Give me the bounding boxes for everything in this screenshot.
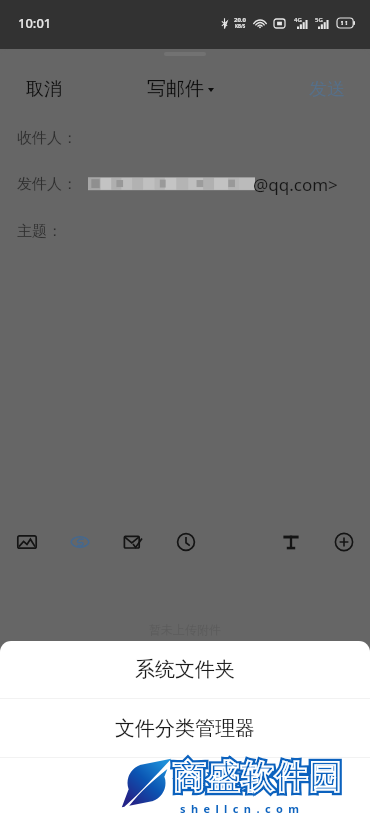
staticText: 文件分类管理器 xyxy=(115,716,255,741)
button[interactable]: 系统文件夹 xyxy=(0,641,370,698)
staticText: @qq.com> xyxy=(253,173,338,196)
button[interactable]: Attach file xyxy=(60,521,100,563)
staticText: 取消 xyxy=(26,78,62,101)
staticText: shellcn.com xyxy=(180,801,305,816)
button[interactable]: Schedule send xyxy=(166,521,206,563)
staticText: 暂未上传附件 xyxy=(149,622,221,637)
staticText: 4G xyxy=(294,16,302,24)
button[interactable]: Insert image xyxy=(7,521,47,563)
staticText: 商盛软件园 xyxy=(172,757,342,797)
staticText: 商盛软件园 xyxy=(172,757,342,797)
staticText: 5G xyxy=(315,16,323,24)
staticText: 商盛软件园 xyxy=(172,757,342,797)
staticText: 收件人： xyxy=(17,129,77,148)
staticText: 发件人： xyxy=(17,175,77,194)
staticText: 10:01 xyxy=(18,14,52,32)
button[interactable]: More options xyxy=(324,521,364,563)
button[interactable]: 取消 xyxy=(0,66,88,113)
staticText: 主题： xyxy=(17,222,62,241)
button[interactable]: 文件分类管理器 xyxy=(0,699,370,757)
staticText: 发送 xyxy=(309,78,345,101)
staticText: KB/S xyxy=(235,23,246,29)
button[interactable]: 写邮件 xyxy=(137,67,224,111)
staticText: 系统文件夹 xyxy=(135,657,235,682)
staticText: 20.0 xyxy=(234,16,246,24)
staticText: 写邮件 xyxy=(147,77,204,101)
button[interactable]: Mail xyxy=(113,521,153,563)
button[interactable]: Text format xyxy=(271,521,311,563)
button[interactable]: 发送 xyxy=(284,66,370,113)
